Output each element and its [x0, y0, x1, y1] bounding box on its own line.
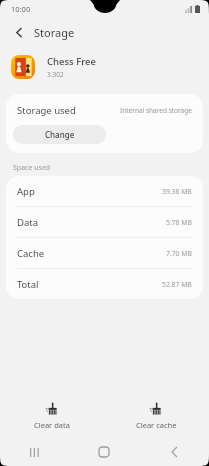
staticText: 39.38 MB: [162, 187, 192, 196]
button[interactable]: Clear cache: [104, 402, 209, 430]
staticText: App: [17, 185, 35, 198]
button[interactable]: App: [6, 176, 203, 206]
staticText: Total: [17, 278, 39, 291]
button[interactable]: Back: [139, 438, 209, 466]
staticText: Storage used: [17, 104, 76, 117]
staticText: Clear data: [34, 420, 70, 430]
staticText: Storage: [34, 25, 75, 40]
staticText: 10:00: [11, 4, 31, 14]
staticText: 3.302: [47, 70, 64, 79]
staticText: Internal shared storage: [120, 106, 192, 115]
button[interactable]: Cache: [6, 238, 203, 268]
button[interactable]: Clear data: [0, 402, 104, 430]
button[interactable]: Change: [13, 125, 106, 144]
staticText: Cache: [17, 247, 45, 260]
button[interactable]: Total: [6, 269, 203, 299]
button[interactable]: Data: [6, 207, 203, 237]
staticText: 5.78 MB: [166, 218, 192, 227]
staticText: 52.87 MB: [162, 280, 192, 289]
button[interactable]: Home: [69, 438, 139, 466]
button[interactable]: Back: [8, 21, 30, 43]
staticText: Clear cache: [136, 420, 177, 430]
staticText: 7.70 MB: [166, 249, 192, 258]
staticText: Change: [45, 129, 75, 140]
staticText: Chess Free: [47, 55, 96, 68]
button[interactable]: Recents: [0, 438, 69, 466]
staticText: Data: [17, 216, 39, 229]
staticText: Space used: [13, 163, 51, 173]
